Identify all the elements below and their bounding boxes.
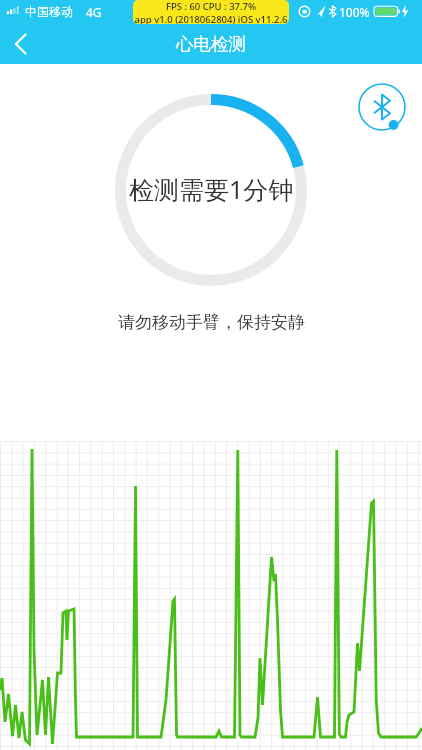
staticText: FPS : 60 CPU : 37.7% [133, 0, 289, 13]
button[interactable] [0, 24, 44, 64]
staticText: app v1.0 (2018062804) iOS v11.2.6 [133, 13, 289, 24]
staticText: 请勿移动手臂，保持安静 [118, 312, 305, 333]
button[interactable] [357, 82, 407, 132]
staticText: 中国移动 [25, 4, 73, 19]
staticText: 4G [86, 4, 102, 20]
staticText: 检测需要1分钟 [129, 172, 294, 206]
staticText: 100% [339, 4, 370, 20]
staticText: 心电检测 [176, 33, 246, 55]
